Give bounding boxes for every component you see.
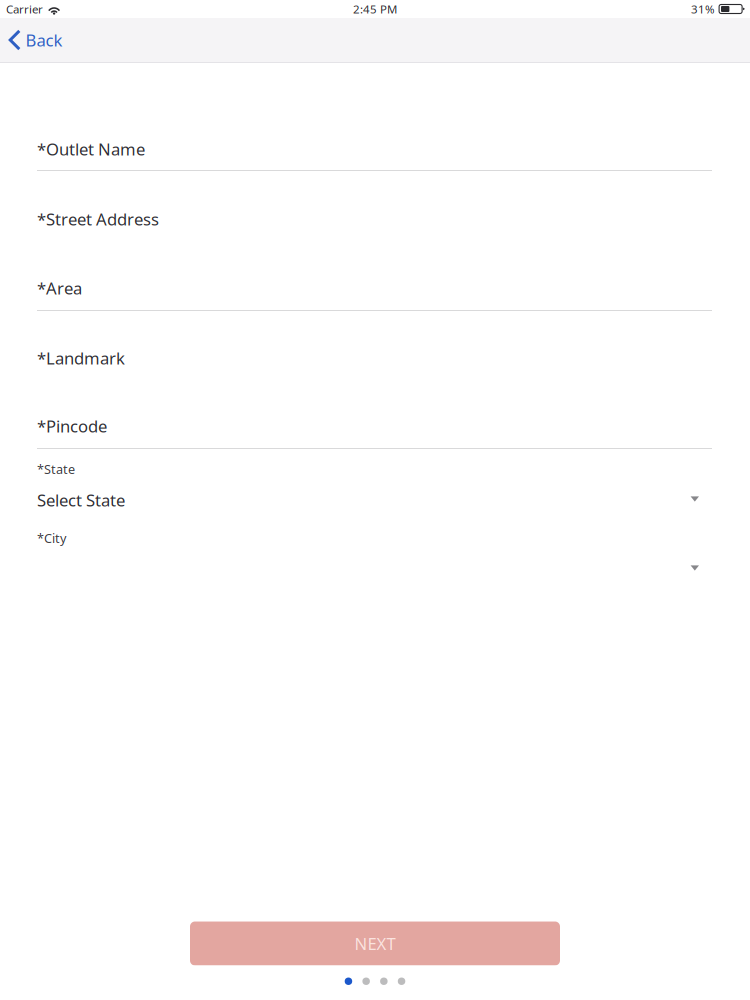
button[interactable]: *Street Address <box>0 195 750 264</box>
button[interactable]: NEXT <box>190 921 560 965</box>
staticText: 2:45 PM <box>353 1 397 17</box>
staticText: *State <box>37 460 75 478</box>
button[interactable]: *Landmark <box>0 334 750 402</box>
staticText: NEXT <box>354 932 395 955</box>
button[interactable]: *Pincode <box>0 402 750 449</box>
staticText: Select State <box>37 489 125 511</box>
button[interactable]: *Outlet Name <box>0 126 750 195</box>
staticText: *Landmark <box>37 347 125 369</box>
button[interactable]: *Area <box>0 264 750 334</box>
button[interactable]: Back <box>0 18 76 62</box>
staticText: *Outlet Name <box>37 138 145 160</box>
staticText: *Area <box>37 277 82 299</box>
staticText: *Street Address <box>37 208 159 230</box>
button[interactable]: *City <box>0 518 750 587</box>
button[interactable]: *State <box>0 449 750 518</box>
staticText: *City <box>37 529 66 547</box>
staticText: *Pincode <box>37 415 107 437</box>
staticText: Back <box>25 29 62 51</box>
staticText: Carrier <box>6 1 43 17</box>
staticText: 31% <box>691 1 715 17</box>
